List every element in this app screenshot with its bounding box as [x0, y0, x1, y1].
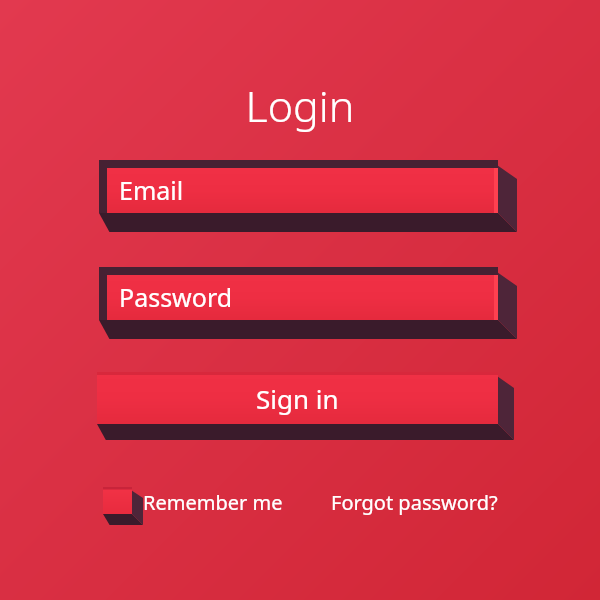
- staticText: Password: [119, 280, 233, 314]
- button[interactable]: Password: [108, 274, 498, 320]
- button[interactable]: Remember me: [143, 487, 288, 517]
- staticText: Sign in: [256, 381, 339, 416]
- button[interactable]: Sign in: [97, 372, 498, 424]
- staticText: Login: [0, 76, 600, 600]
- button[interactable]: Email: [108, 167, 498, 213]
- button[interactable]: Remember me checkbox: [103, 487, 143, 527]
- staticText: Forgot password?: [331, 489, 498, 516]
- staticText: Email: [119, 173, 184, 207]
- button[interactable]: Forgot password?: [331, 487, 503, 517]
- staticText: Remember me: [143, 489, 283, 516]
